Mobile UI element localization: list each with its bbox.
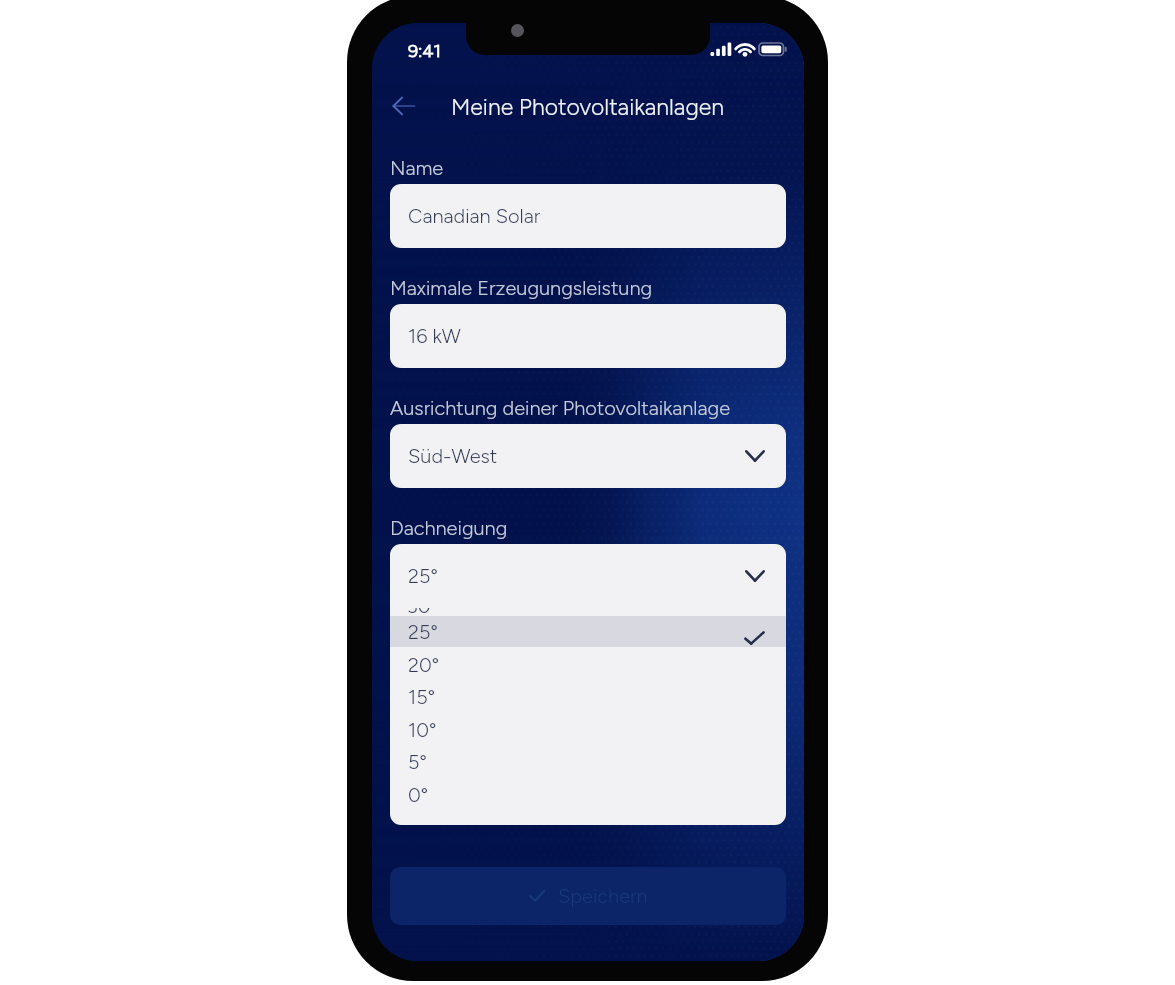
button[interactable]: 15°	[390, 681, 786, 712]
staticText: 0°	[408, 783, 429, 807]
staticText: Ausrichtung deiner Photovoltaikanlage	[390, 396, 731, 420]
button[interactable]: 25°	[390, 616, 786, 647]
button[interactable]: Back	[382, 88, 426, 124]
button[interactable]: 5°	[390, 746, 786, 777]
staticText: Maximale Erzeugungsleistung	[390, 276, 653, 300]
button[interactable]: 25°	[390, 544, 786, 608]
staticText: Meine Photovoltaikanlagen	[451, 93, 725, 121]
staticText: 16 kW	[408, 324, 461, 348]
button[interactable]: 10°	[390, 714, 786, 745]
button[interactable]: 20°	[390, 649, 786, 680]
staticText: Süd-West	[408, 444, 498, 468]
staticText: 5°	[408, 750, 427, 774]
staticText: 30°	[407, 594, 438, 618]
staticText: Name	[390, 156, 444, 180]
staticText: 20°	[408, 653, 440, 677]
button[interactable]: Canadian Solar	[390, 184, 786, 248]
staticText: Canadian Solar	[408, 204, 541, 228]
button[interactable]	[390, 616, 786, 647]
button[interactable]: 0°	[390, 779, 786, 810]
button[interactable]: 16 kW	[390, 304, 786, 368]
staticText: Dachneigung	[390, 516, 508, 540]
staticText: 10°	[408, 718, 437, 742]
staticText: 25°	[408, 564, 438, 588]
staticText: Speichern	[558, 884, 648, 908]
button[interactable]: Süd-West	[390, 424, 786, 488]
staticText: 15°	[408, 685, 435, 709]
staticText: 9:41	[408, 40, 441, 62]
staticText: 25°	[408, 620, 438, 644]
